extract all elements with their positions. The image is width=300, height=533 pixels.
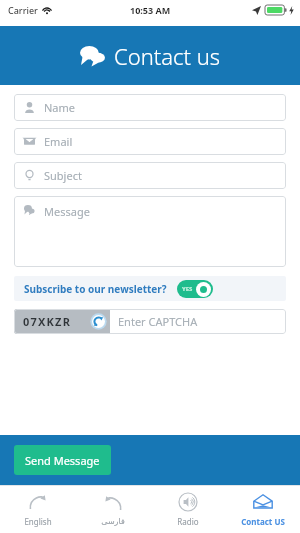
button[interactable]: Email bbox=[14, 128, 286, 155]
button[interactable]: Radio bbox=[150, 486, 225, 533]
staticText: Subscribe to our newsletter? bbox=[24, 282, 167, 296]
button[interactable]: Refresh CAPTCHA bbox=[90, 313, 107, 330]
button[interactable]: Message bbox=[14, 196, 286, 267]
button[interactable]: Contact US bbox=[225, 486, 300, 533]
button[interactable]: Subscribe to our newsletter? bbox=[14, 276, 286, 301]
staticText: Radio bbox=[177, 516, 199, 527]
button[interactable]: فارسی bbox=[75, 486, 150, 533]
button[interactable]: Newsletter toggle on bbox=[177, 280, 213, 298]
staticText: English bbox=[24, 516, 52, 527]
staticText: Enter CAPTCHA bbox=[118, 314, 198, 329]
staticText: Email bbox=[44, 134, 73, 149]
staticText: Subject bbox=[44, 168, 82, 183]
staticText: Contact us bbox=[114, 41, 221, 71]
staticText: Contact US bbox=[241, 516, 285, 527]
button[interactable]: Name bbox=[14, 94, 286, 121]
staticText: YES bbox=[182, 285, 193, 293]
staticText: Message bbox=[44, 204, 90, 219]
staticText: 10:53 AM bbox=[130, 4, 171, 16]
button[interactable]: English bbox=[0, 486, 75, 533]
button[interactable]: Subject bbox=[14, 162, 286, 189]
button[interactable]: 07XKZR bbox=[14, 309, 286, 334]
staticText: Name bbox=[44, 100, 76, 115]
staticText: Carrier bbox=[8, 4, 38, 16]
staticText: 07XKZR bbox=[23, 314, 72, 329]
button[interactable]: Send Message bbox=[14, 445, 111, 475]
staticText: Send Message bbox=[25, 453, 100, 468]
staticText: فارسی bbox=[101, 517, 125, 526]
